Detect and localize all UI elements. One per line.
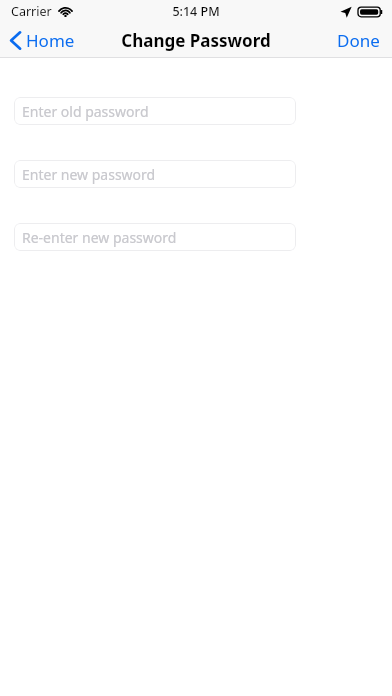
button[interactable]: Re-enter new password (14, 223, 296, 251)
other: Location services active (340, 6, 352, 18)
staticText: Done (337, 29, 380, 52)
staticText: Home (26, 29, 75, 52)
button[interactable]: Enter old password (14, 97, 296, 125)
staticText: Carrier (11, 3, 52, 20)
staticText: 5:14 PM (172, 3, 220, 20)
staticText: Enter old password (22, 102, 149, 121)
button[interactable]: Done (325, 23, 392, 58)
staticText: Enter new password (22, 165, 156, 184)
staticText: Re-enter new password (22, 228, 177, 247)
button[interactable]: Home (0, 24, 85, 57)
button[interactable]: Enter new password (14, 160, 296, 188)
other: Battery full (358, 6, 383, 18)
staticText: Change Password (121, 29, 271, 52)
